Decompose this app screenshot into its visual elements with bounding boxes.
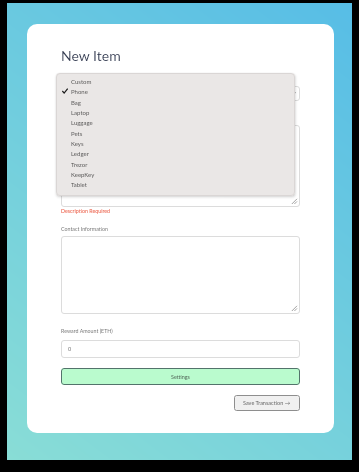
button[interactable]: Laptop — [56, 107, 295, 117]
staticText: Phone — [71, 88, 88, 95]
button[interactable]: Phone — [56, 86, 295, 96]
staticText: New Item — [61, 47, 121, 64]
button[interactable]: Custom — [56, 76, 295, 86]
button[interactable]: Contact Information — [61, 236, 300, 314]
staticText: Tablet — [71, 181, 87, 188]
button[interactable]: Pets — [56, 128, 295, 138]
staticText: Save Transaction → — [243, 400, 291, 407]
button[interactable]: Description — [61, 125, 300, 207]
button[interactable]: Tablet — [56, 179, 295, 189]
button[interactable]: Ledger — [56, 148, 295, 158]
button[interactable]: Trezor — [56, 159, 295, 169]
button[interactable]: Save Transaction → — [234, 395, 300, 411]
button[interactable]: Settings — [61, 368, 300, 385]
staticText: Ledger — [71, 150, 89, 157]
staticText: Keys — [71, 140, 84, 147]
staticText: Laptop — [71, 109, 90, 116]
staticText: KeepKey — [71, 171, 95, 178]
staticText: Luggage — [71, 119, 93, 126]
button[interactable]: Reward Amount — [61, 340, 300, 358]
staticText: Trezor — [71, 161, 88, 168]
button[interactable]: Item type — [61, 86, 300, 101]
staticText: Settings — [171, 374, 190, 380]
staticText: 0 — [68, 346, 72, 353]
staticText: Pets — [71, 130, 83, 137]
staticText: Reward Amount (ETH) — [61, 328, 113, 334]
staticText: Contact Information — [61, 226, 108, 232]
staticText: Custom — [71, 78, 92, 85]
button[interactable]: Luggage — [56, 117, 295, 127]
button[interactable]: Keys — [56, 138, 295, 148]
button[interactable]: Bag — [56, 97, 295, 107]
button[interactable]: KeepKey — [56, 169, 295, 179]
staticText: Bag — [71, 99, 81, 106]
staticText: Description Required — [61, 208, 111, 214]
